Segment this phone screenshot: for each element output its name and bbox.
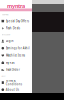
staticText: Terms & Conditions xyxy=(6,79,22,86)
staticText: Earnings for Akhil xyxy=(6,46,30,50)
staticText: myntra xyxy=(7,2,25,10)
button[interactable]: Earnings for Akhil xyxy=(0,45,32,52)
button[interactable]: Terms & Conditions xyxy=(0,79,32,86)
staticText: Special Day Offers xyxy=(6,19,29,23)
staticText: Watchlist Items xyxy=(6,54,25,57)
button[interactable]: Special Day Offers xyxy=(0,17,32,25)
staticText: SHOPPING xyxy=(1,14,8,16)
button[interactable]: My Kart xyxy=(0,59,32,66)
staticText: Track Order xyxy=(6,68,20,71)
staticText: HELP xyxy=(1,75,5,77)
button[interactable]: Watchlist Items xyxy=(0,52,32,59)
staticText: Flash Deals xyxy=(6,26,20,30)
staticText: My Kart xyxy=(6,61,15,64)
staticText: About Us xyxy=(6,88,19,91)
staticText: MY ACCOUNT xyxy=(1,34,10,36)
button[interactable]: Login xyxy=(0,37,32,45)
staticText: Login xyxy=(6,39,14,43)
button[interactable]: About Us xyxy=(0,86,32,93)
button[interactable]: Track Order xyxy=(0,66,32,73)
button[interactable]: Flash Deals xyxy=(0,25,32,32)
